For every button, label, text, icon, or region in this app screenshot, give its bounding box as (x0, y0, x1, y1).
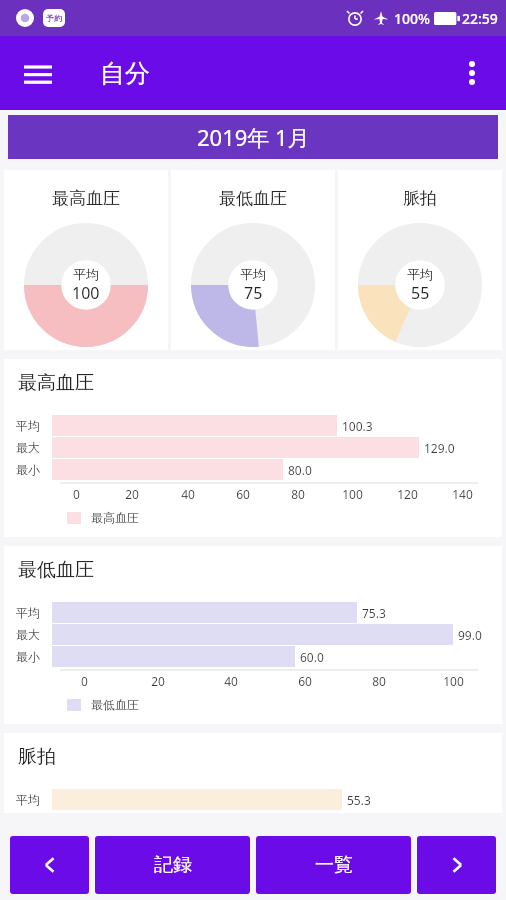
button[interactable]: Next month (417, 836, 496, 894)
button[interactable]: 脈拍 (4, 733, 502, 813)
staticText: 120 (397, 486, 418, 502)
button[interactable]: Previous month (10, 836, 89, 894)
staticText: 最大 (16, 627, 40, 642)
button[interactable]: 最低血圧 (4, 546, 502, 724)
staticText: 140 (452, 486, 473, 502)
staticText: 55.3 (347, 792, 371, 808)
button[interactable]: Menu (14, 49, 62, 97)
button[interactable]: 記録 (95, 836, 250, 894)
staticText: 20 (151, 673, 165, 689)
staticText: 75 (244, 282, 263, 304)
staticText: 0 (81, 673, 88, 689)
staticText: 最低血圧 (18, 558, 94, 582)
staticText: 40 (224, 673, 238, 689)
staticText: 99.0 (458, 627, 482, 643)
staticText: 55 (411, 282, 430, 304)
staticText: 80 (372, 673, 386, 689)
staticText: 100 (342, 486, 363, 502)
staticText: 75.3 (362, 605, 386, 621)
staticText: 脈拍 (403, 188, 437, 209)
staticText: 平均 (240, 266, 266, 282)
staticText: 最高血圧 (91, 510, 139, 525)
staticText: 20 (125, 486, 139, 502)
staticText: 100.3 (342, 418, 373, 434)
staticText: 最低血圧 (219, 188, 287, 209)
staticText: 60 (236, 486, 250, 502)
staticText: 平均 (16, 605, 40, 620)
staticText: 0 (73, 486, 80, 502)
staticText: 最高血圧 (18, 371, 94, 395)
staticText: 自分 (100, 58, 150, 89)
staticText: 40 (181, 486, 195, 502)
staticText: 最低血圧 (91, 697, 139, 712)
staticText: 60.0 (300, 649, 324, 665)
staticText: 脈拍 (18, 745, 56, 769)
staticText: 100 (443, 673, 464, 689)
button[interactable]: 最低血圧 (171, 170, 335, 350)
button[interactable]: 脈拍 (338, 170, 502, 350)
staticText: 最小 (16, 649, 40, 664)
staticText: 平均 (16, 418, 40, 433)
staticText: 100 (72, 282, 100, 304)
staticText: 80.0 (288, 462, 312, 478)
staticText: 平均 (407, 266, 433, 282)
staticText: 80 (291, 486, 305, 502)
button[interactable]: 最高血圧 (4, 359, 502, 537)
staticText: 22:59 (462, 9, 498, 28)
button[interactable]: 一覧 (256, 836, 411, 894)
staticText: 最大 (16, 440, 40, 455)
staticText: 2019年 1月 (197, 122, 310, 152)
button[interactable]: 最高血圧 (4, 170, 168, 350)
staticText: 一覧 (315, 853, 353, 877)
staticText: 100% (394, 9, 430, 28)
staticText: 129.0 (424, 440, 455, 456)
staticText: 平均 (73, 266, 99, 282)
staticText: 平均 (16, 792, 40, 807)
staticText: 最高血圧 (52, 188, 120, 209)
button[interactable]: 2019年 1月 (8, 115, 498, 159)
staticText: 記録 (154, 853, 192, 877)
staticText: 最小 (16, 462, 40, 477)
button[interactable]: More options (448, 49, 496, 97)
staticText: 60 (298, 673, 312, 689)
staticText: 予約 (46, 13, 62, 23)
